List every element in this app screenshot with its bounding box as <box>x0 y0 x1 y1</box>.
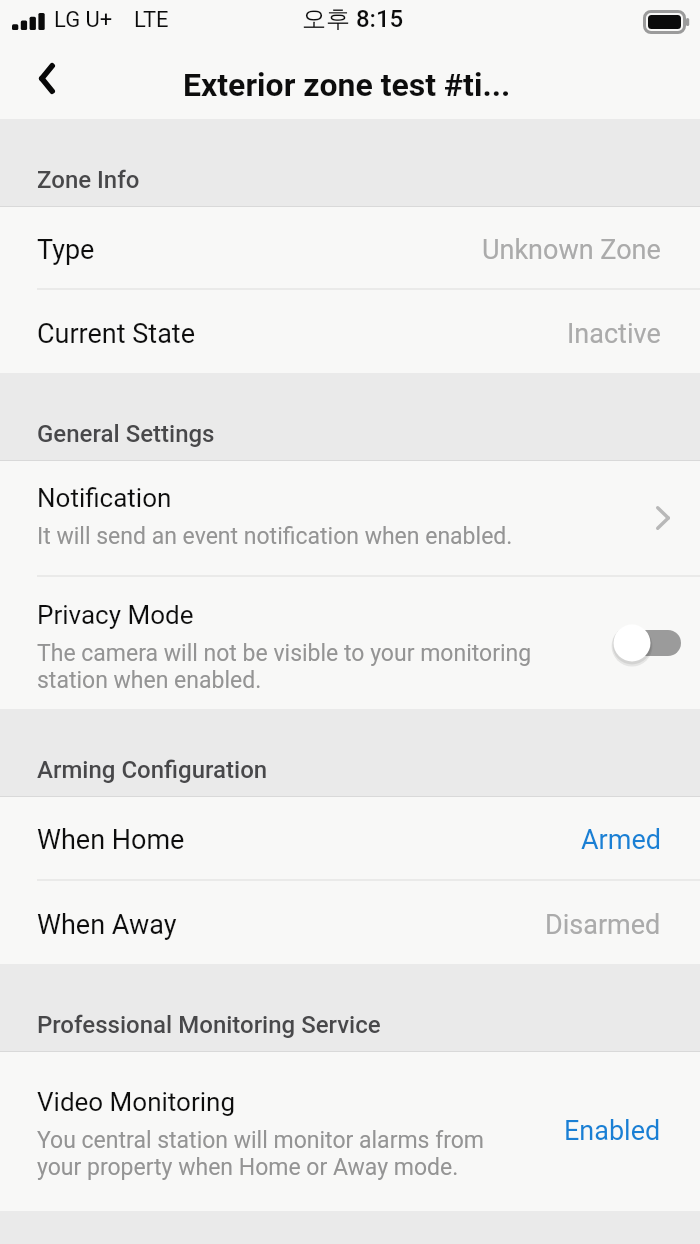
staticText: Professional Monitoring Service <box>37 1011 381 1039</box>
staticText: Privacy Mode <box>37 600 194 630</box>
staticText: When Away <box>37 909 177 941</box>
staticText: Unknown Zone <box>482 234 661 266</box>
button[interactable]: When Home <box>0 797 700 879</box>
staticText: It will send an event notification when … <box>37 523 513 550</box>
staticText: LG U+ <box>54 7 113 33</box>
button[interactable]: Back <box>0 48 93 119</box>
button[interactable]: Privacy Mode toggle <box>595 621 681 665</box>
staticText: Exterior zone test #ti... <box>183 66 511 104</box>
staticText: Inactive <box>567 318 661 350</box>
staticText: 오후 8:15 <box>302 4 404 34</box>
staticText: Armed <box>581 824 661 856</box>
staticText: Current State <box>37 318 195 350</box>
staticText: General Settings <box>37 420 215 448</box>
staticText: Enabled <box>564 1115 661 1147</box>
staticText: The camera will not be visible to your m… <box>37 640 532 694</box>
staticText: LTE <box>134 7 169 33</box>
button[interactable]: When Away <box>0 881 700 964</box>
button[interactable]: Type <box>0 207 700 288</box>
staticText: When Home <box>37 824 185 856</box>
button[interactable]: Video Monitoring <box>0 1052 700 1211</box>
staticText: Zone Info <box>37 166 140 194</box>
button[interactable]: Current State <box>0 290 700 373</box>
staticText: Notification <box>37 483 172 513</box>
staticText: Disarmed <box>545 909 661 941</box>
button[interactable]: Notification <box>0 461 700 575</box>
button[interactable]: Privacy Mode <box>0 577 700 709</box>
staticText: Type <box>37 234 95 266</box>
staticText: You central station will monitor alarms … <box>37 1127 485 1181</box>
staticText: Arming Configuration <box>37 756 268 784</box>
staticText: Video Monitoring <box>37 1087 235 1117</box>
